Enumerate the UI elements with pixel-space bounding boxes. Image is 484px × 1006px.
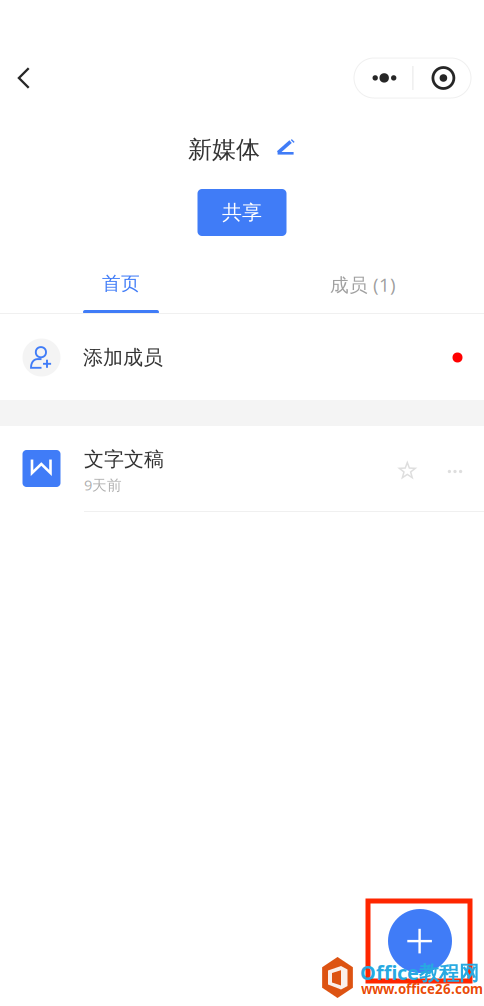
button[interactable]: Rename	[276, 138, 295, 156]
staticText: 首页	[102, 272, 140, 295]
button[interactable]: Back	[7, 61, 41, 95]
staticText: 文字文稿	[84, 447, 164, 472]
button[interactable]: 共享	[197, 189, 286, 236]
staticText: www.office26.com	[361, 980, 483, 998]
staticText: 共享	[222, 200, 262, 225]
button[interactable]: 成员 (1)	[242, 272, 484, 314]
button[interactable]: New document	[388, 909, 452, 973]
button[interactable]: 首页	[0, 272, 242, 314]
staticText: 新媒体	[188, 135, 260, 164]
staticText: 添加成员	[83, 345, 163, 370]
staticText: Office教程网	[360, 959, 479, 986]
staticText: 成员 (1)	[330, 272, 396, 297]
button[interactable]: 添加成员	[0, 314, 484, 401]
button[interactable]: Menu	[354, 58, 471, 98]
staticText: 9天前	[84, 475, 122, 494]
button[interactable]: 文字文稿	[0, 426, 484, 511]
